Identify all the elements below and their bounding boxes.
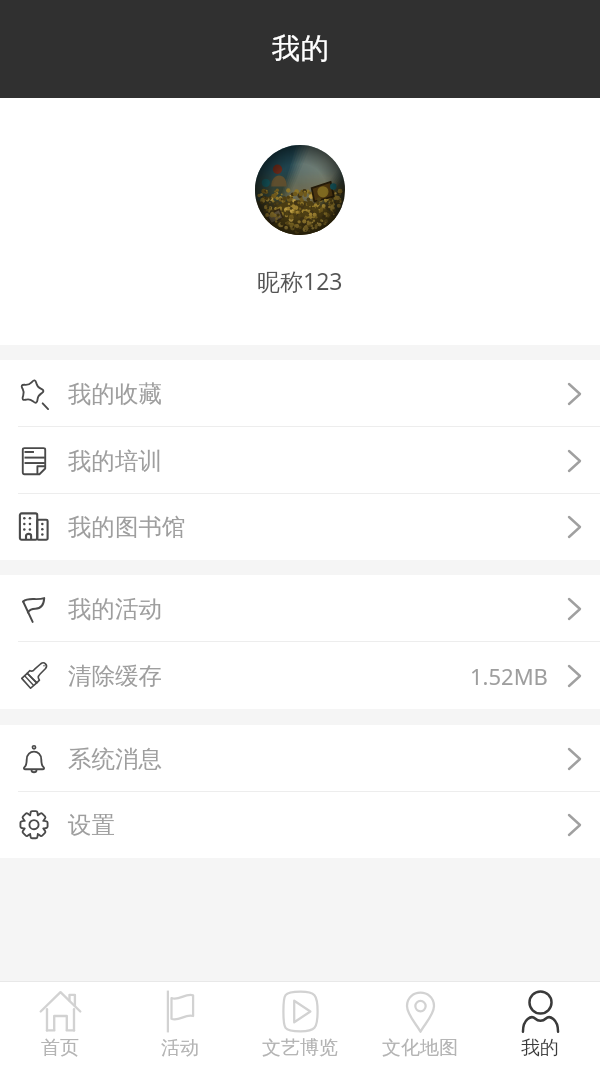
staticText: 1.52MB [470,661,548,691]
staticText: 清除缓存 [68,661,162,691]
staticText: 设置 [68,810,115,840]
staticText: 我的培训 [68,446,162,476]
button[interactable]: 我的活动 [0,575,600,642]
button[interactable]: 系统消息 [0,725,600,792]
button[interactable]: Avatar [255,145,345,235]
staticText: 我的活动 [68,594,162,624]
button[interactable]: 文艺博览 [240,982,360,1067]
staticText: 文艺博览 [262,1036,338,1060]
staticText: 我的 [521,1036,559,1060]
button[interactable]: 我的 [480,982,600,1067]
staticText: 首页 [41,1036,79,1060]
button[interactable]: 我的培训 [0,427,600,494]
button[interactable]: 文化地图 [360,982,480,1067]
button[interactable]: 清除缓存 [0,642,600,709]
staticText: 昵称123 [257,265,343,296]
button[interactable]: 我的图书馆 [0,494,600,560]
staticText: 文化地图 [382,1036,458,1060]
staticText: 系统消息 [68,744,162,774]
button[interactable]: 首页 [0,982,120,1067]
staticText: 活动 [161,1036,199,1060]
button[interactable]: 活动 [120,982,240,1067]
button[interactable]: 我的收藏 [0,360,600,427]
staticText: 我的 [272,31,329,67]
staticText: 我的收藏 [68,379,162,409]
button[interactable]: 设置 [0,792,600,858]
staticText: 我的图书馆 [68,512,186,542]
